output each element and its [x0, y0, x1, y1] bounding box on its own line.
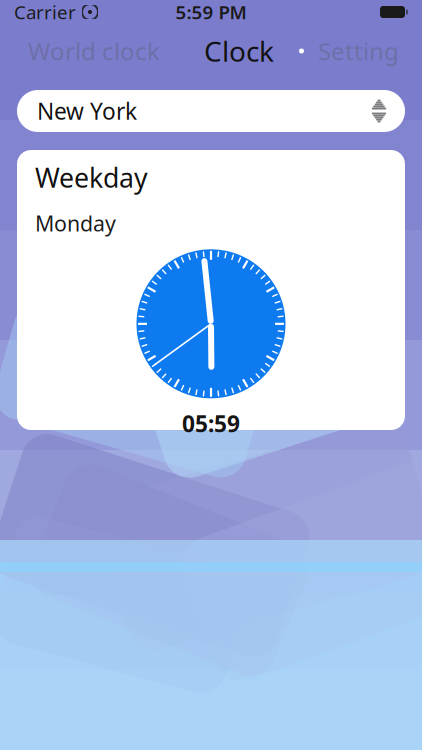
button[interactable]: New York — [17, 90, 405, 132]
staticText: World clock — [28, 35, 160, 67]
staticText: Monday — [35, 209, 116, 237]
button[interactable]: World clock — [18, 27, 170, 75]
staticText: Clock — [204, 32, 274, 70]
staticText: New York — [37, 96, 137, 126]
staticText: Setting — [318, 35, 399, 67]
button[interactable]: Setting — [308, 27, 409, 75]
staticText: Weekday — [35, 160, 148, 195]
staticText: 5:59 PM — [175, 0, 246, 24]
button[interactable]: Clock — [194, 24, 284, 78]
staticText: Carrier — [14, 0, 76, 24]
staticText: 05:59 — [182, 408, 240, 438]
